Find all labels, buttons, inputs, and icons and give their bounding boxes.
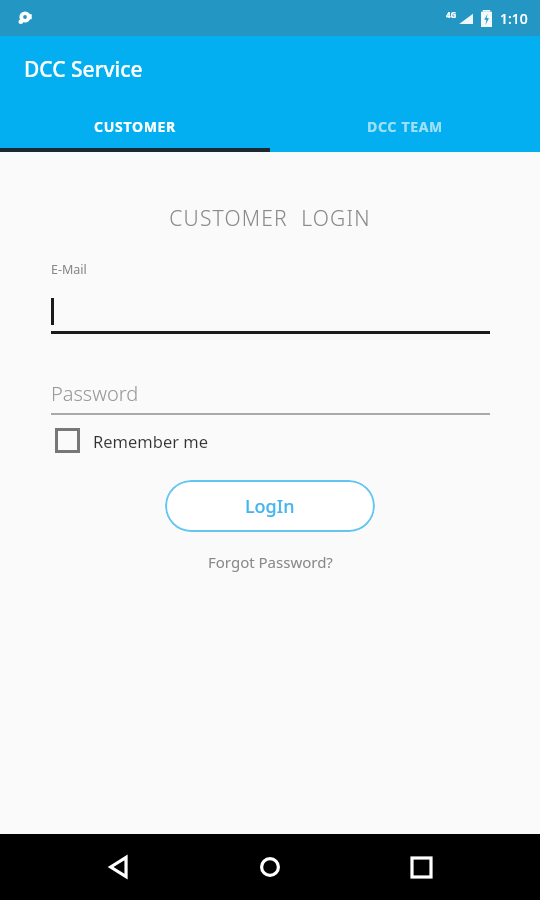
staticText: DCC Service: [24, 55, 143, 84]
button[interactable]: CUSTOMER: [0, 100, 270, 152]
staticText: Forgot Password?: [208, 552, 333, 572]
button[interactable]: Back: [87, 835, 151, 899]
button[interactable]: Password: [51, 375, 490, 415]
staticText: CUSTOMER: [94, 117, 176, 136]
button[interactable]: Recent apps: [389, 835, 453, 899]
staticText: E-Mail: [51, 261, 87, 278]
staticText: Password: [51, 380, 139, 407]
staticText: 1:10: [500, 9, 528, 28]
button[interactable]: DCC TEAM: [270, 100, 540, 152]
button[interactable]: Home: [238, 835, 302, 899]
staticText: Remember me: [93, 430, 209, 452]
staticText: LogIn: [245, 494, 295, 519]
button[interactable]: Forgot Password?: [202, 546, 339, 578]
staticText: CUSTOMER LOGIN: [0, 204, 540, 233]
button[interactable]: [51, 294, 490, 334]
staticText: 4G: [446, 9, 457, 20]
staticText: DCC TEAM: [367, 117, 443, 136]
button[interactable]: Remember me: [55, 428, 209, 453]
button[interactable]: LogIn: [165, 480, 375, 532]
